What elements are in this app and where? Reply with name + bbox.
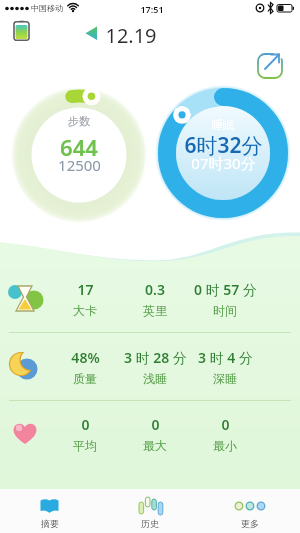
button[interactable]: 0 (190, 401, 260, 467)
staticText: 中国移动 (31, 3, 63, 13)
staticText: 最大 (143, 438, 167, 453)
staticText: 48% (71, 348, 100, 367)
button[interactable] (256, 51, 285, 80)
staticText: 最小 (213, 438, 237, 453)
staticText: 0.3 (145, 280, 165, 299)
staticText: 英里 (143, 303, 167, 318)
staticText: 17 (77, 280, 94, 299)
staticText: 更多 (241, 518, 259, 529)
button[interactable]: 48% (50, 334, 120, 400)
staticText: 睡眠 (212, 118, 234, 132)
staticText: 质量 (73, 371, 97, 386)
staticText: 17:51 (140, 3, 164, 15)
staticText: 摘要 (41, 518, 59, 529)
staticText: 0 (151, 415, 160, 434)
staticText: 大卡 (73, 303, 97, 318)
button[interactable]: 3 时 28 分 (120, 334, 190, 400)
button[interactable]: 0 (50, 401, 120, 467)
staticText: 6时32分 (184, 131, 263, 160)
staticText: 07时30分 (191, 153, 256, 173)
staticText: 12500 (58, 155, 101, 175)
button[interactable]: 更多 (200, 489, 300, 533)
staticText: 浅睡 (143, 371, 167, 386)
button[interactable]: 历史 (100, 489, 200, 533)
staticText: 3 时 4 分 (198, 348, 253, 367)
button[interactable]: 17 (50, 266, 120, 332)
staticText: 0 时 57 分 (194, 280, 257, 299)
button[interactable]: 0.3 (120, 266, 190, 332)
staticText: 历史 (141, 518, 159, 529)
button[interactable]: 摘要 (0, 489, 100, 533)
staticText: 步数 (68, 114, 90, 128)
button[interactable]: 3 时 4 分 (190, 334, 260, 400)
staticText: 平均 (73, 438, 97, 453)
staticText: 644 (60, 132, 98, 162)
staticText: 12.19 (105, 22, 157, 49)
staticText: 0 (221, 415, 230, 434)
staticText: 0 (81, 415, 90, 434)
staticText: 深睡 (213, 371, 237, 386)
staticText: 时间 (213, 303, 237, 318)
staticText: 3 时 28 分 (124, 348, 187, 367)
button[interactable]: 0 时 57 分 (190, 266, 260, 332)
button[interactable]: 0 (120, 401, 190, 467)
